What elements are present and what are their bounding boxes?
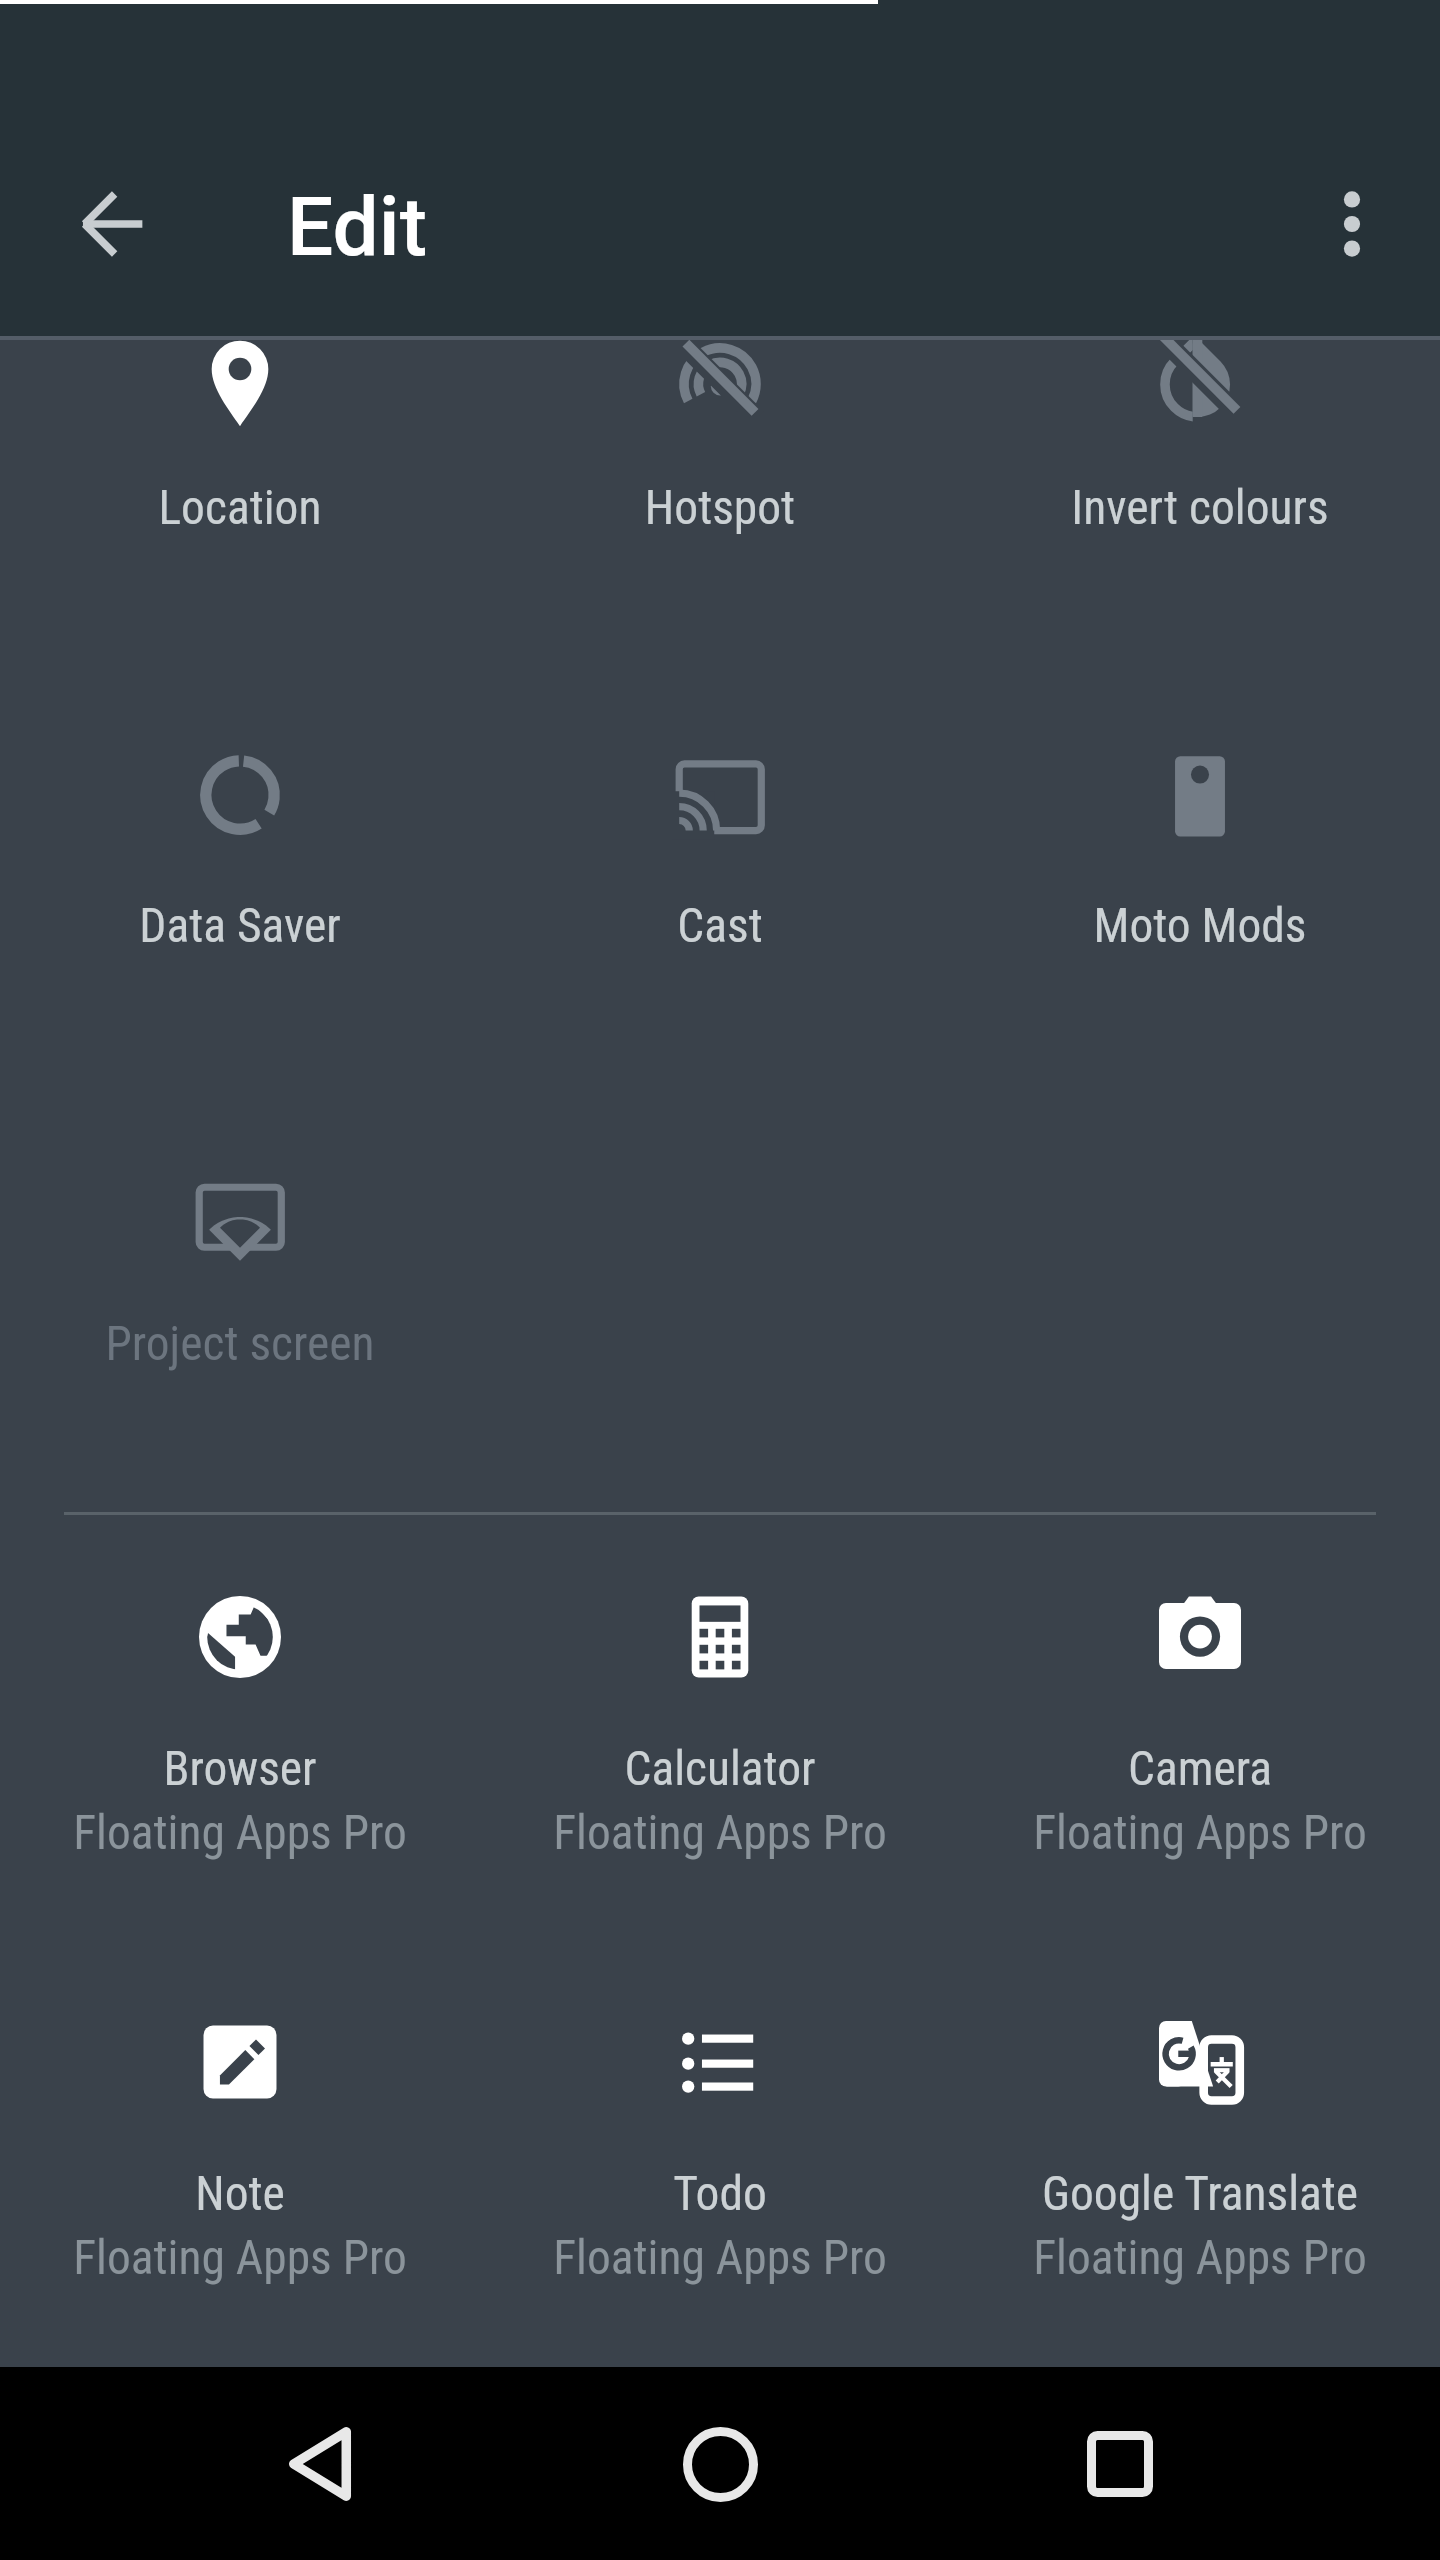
staticText: Data Saver — [0, 898, 480, 954]
button[interactable] — [0, 1537, 480, 1857]
button[interactable] — [480, 1962, 960, 2282]
staticText: Camera — [960, 1741, 1440, 1797]
button[interactable]: More options — [1256, 128, 1440, 320]
staticText: Moto Mods — [960, 898, 1440, 954]
staticText: Floating Apps Pro — [480, 1805, 960, 1861]
staticText: Browser — [0, 1741, 480, 1797]
staticText: Location — [0, 480, 480, 536]
staticText: Hotspot — [480, 480, 960, 536]
staticText: Note — [0, 2166, 480, 2222]
button[interactable] — [480, 271, 960, 591]
button[interactable]: Back — [230, 2374, 410, 2554]
staticText: Floating Apps Pro — [480, 2230, 960, 2286]
staticText: Invert colours — [960, 480, 1440, 536]
staticText: Floating Apps Pro — [0, 2230, 480, 2286]
button[interactable] — [960, 689, 1440, 1009]
button[interactable] — [960, 271, 1440, 591]
staticText: Calculator — [480, 1741, 960, 1797]
staticText: Floating Apps Pro — [960, 2230, 1440, 2286]
button[interactable]: Home — [630, 2374, 810, 2554]
button[interactable]: Back — [16, 128, 208, 320]
button[interactable]: Recents — [1030, 2374, 1210, 2554]
button[interactable] — [0, 1107, 480, 1427]
staticText: Edit — [287, 179, 427, 275]
staticText: Project screen — [0, 1316, 480, 1372]
button[interactable] — [0, 1962, 480, 2282]
staticText: Floating Apps Pro — [0, 1805, 480, 1861]
button[interactable] — [480, 1537, 960, 1857]
staticText: Google Translate — [960, 2166, 1440, 2222]
button[interactable] — [480, 689, 960, 1009]
staticText: Floating Apps Pro — [960, 1805, 1440, 1861]
staticText: Todo — [480, 2166, 960, 2222]
button[interactable] — [960, 1962, 1440, 2282]
button[interactable] — [960, 1537, 1440, 1857]
button[interactable] — [0, 689, 480, 1009]
button[interactable] — [0, 271, 480, 591]
staticText: Cast — [480, 898, 960, 954]
